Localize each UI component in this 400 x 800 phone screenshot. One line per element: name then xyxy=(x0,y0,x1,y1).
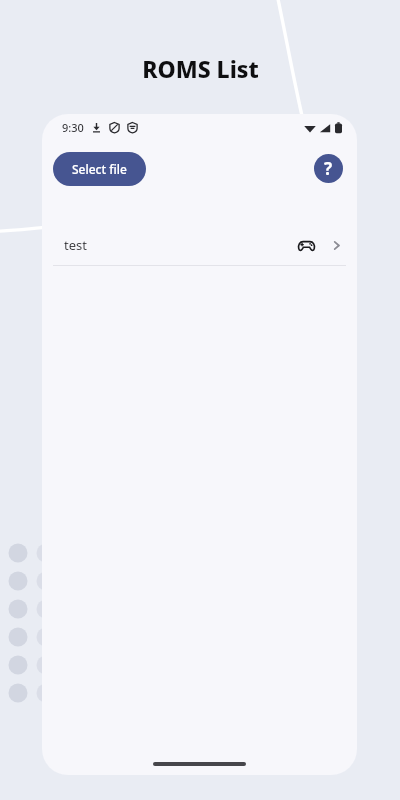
button[interactable]: Select file xyxy=(53,152,146,186)
button[interactable]: Help xyxy=(314,154,343,183)
staticText: Select file xyxy=(72,161,127,177)
staticText: ? xyxy=(324,157,333,180)
staticText: test xyxy=(64,236,87,254)
other: Gamepad xyxy=(298,237,315,254)
staticText: ROMS List xyxy=(142,53,259,84)
staticText: 9:30 xyxy=(62,120,84,135)
button[interactable]: test xyxy=(42,225,357,265)
